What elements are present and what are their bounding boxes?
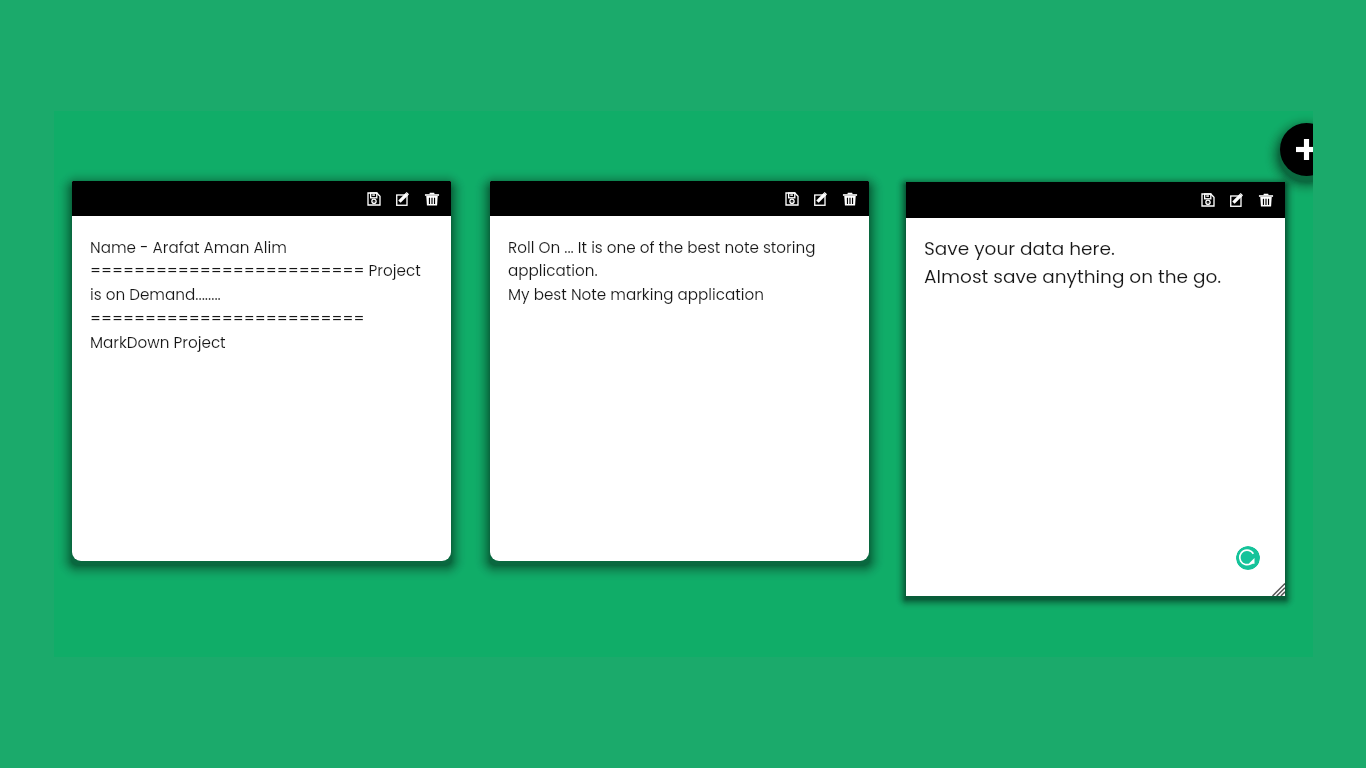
button[interactable]: Delete note <box>424 191 440 207</box>
button[interactable]: Save note <box>784 191 800 207</box>
button[interactable]: Grammarly <box>1236 546 1260 570</box>
button[interactable]: Delete note <box>1258 192 1274 208</box>
button[interactable]: Save note <box>72 181 451 561</box>
button[interactable]: Add note <box>1280 123 1313 176</box>
button[interactable]: Delete note <box>842 191 858 207</box>
staticText: Roll On ... It is one of the best note s… <box>508 237 847 306</box>
button[interactable]: Edit note <box>395 191 411 207</box>
staticText: Save your data here. Almost save anythin… <box>924 236 1222 290</box>
staticText: Name - Arafat Aman Alim ================… <box>90 237 429 354</box>
button[interactable]: Save note <box>1200 192 1216 208</box>
button[interactable]: Save note <box>906 182 1285 596</box>
button[interactable]: Edit note <box>813 191 829 207</box>
button[interactable]: Save note <box>366 191 382 207</box>
button[interactable]: Edit note <box>1229 192 1245 208</box>
button[interactable]: Save note <box>490 181 869 561</box>
